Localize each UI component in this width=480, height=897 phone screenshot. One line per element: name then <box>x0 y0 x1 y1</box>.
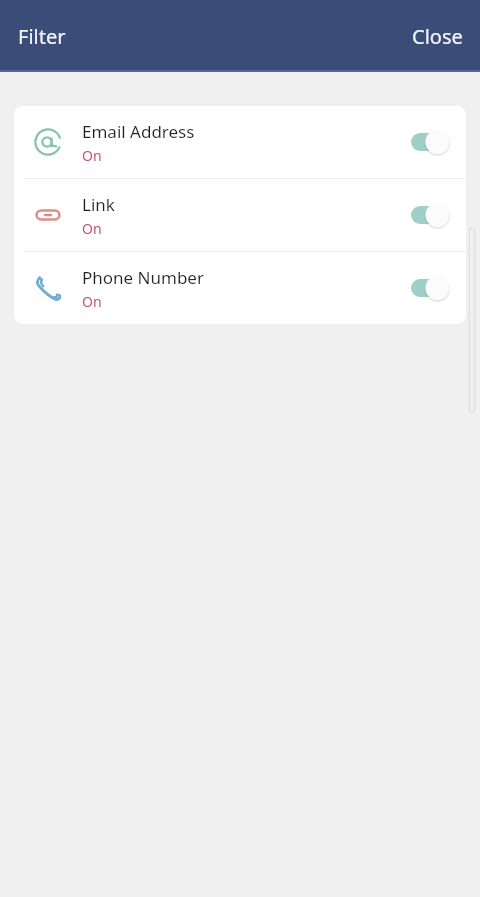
button[interactable]: Link <box>14 179 466 251</box>
staticText: On <box>82 146 102 165</box>
staticText: Phone Number <box>82 266 204 289</box>
button[interactable]: Email Address toggle, on <box>400 106 466 178</box>
button[interactable]: Phone Number <box>14 252 466 324</box>
staticText: Email Address <box>82 120 195 143</box>
staticText: On <box>82 292 102 311</box>
button[interactable]: Close <box>402 17 480 56</box>
staticText: Filter <box>18 23 66 50</box>
button[interactable]: Email Address <box>14 106 466 178</box>
staticText: Close <box>412 23 463 50</box>
button[interactable]: Link toggle, on <box>400 179 466 251</box>
staticText: Link <box>82 193 115 216</box>
button[interactable]: Phone Number toggle, on <box>400 252 466 324</box>
button[interactable]: Filter <box>0 17 76 56</box>
staticText: On <box>82 219 102 238</box>
